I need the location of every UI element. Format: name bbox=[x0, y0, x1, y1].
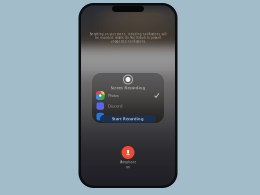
staticText: Start Recording bbox=[112, 116, 144, 121]
staticText: Microphone bbox=[119, 160, 136, 164]
staticText: On bbox=[126, 165, 130, 169]
staticText: Facebook bbox=[108, 114, 124, 119]
staticText: Screen Recording bbox=[110, 85, 145, 90]
staticText: Everything on your screen, including not… bbox=[89, 32, 166, 43]
button[interactable]: Discord bbox=[92, 101, 164, 111]
button[interactable]: Facebook bbox=[92, 111, 164, 122]
staticText: Discord bbox=[108, 103, 122, 109]
staticText: Photos bbox=[108, 93, 119, 98]
button[interactable]: Start Recording bbox=[100, 115, 156, 122]
button[interactable]: Photos bbox=[92, 90, 164, 101]
button[interactable]: Microphone On bbox=[119, 146, 136, 169]
